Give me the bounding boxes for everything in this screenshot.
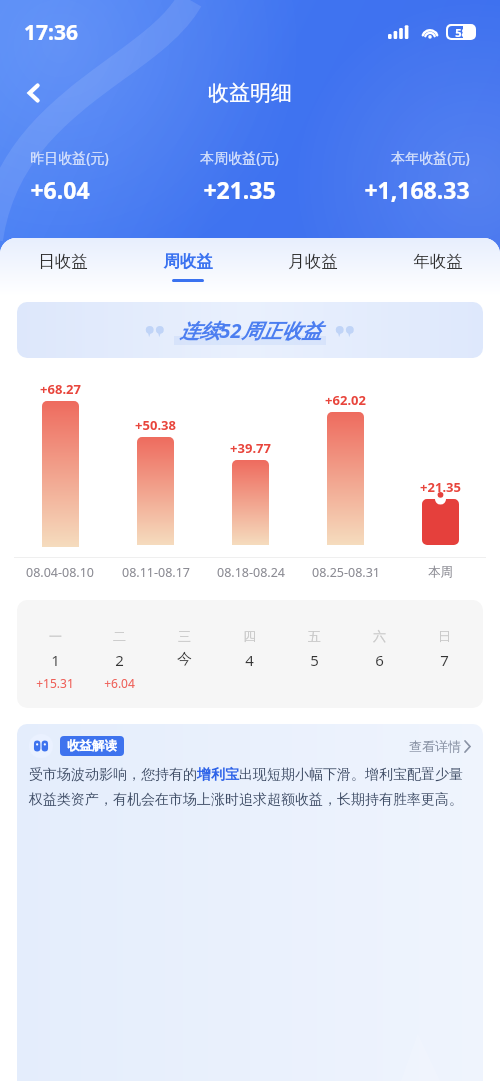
staticText: 08.11-08.17 — [122, 564, 190, 581]
staticText: 7 — [440, 650, 449, 670]
staticText: +6.04 — [104, 675, 135, 691]
staticText: +50.38 — [135, 416, 176, 434]
button[interactable]: Back — [10, 69, 58, 117]
staticText: 今 — [177, 650, 192, 669]
staticText: 本年收益(元) — [391, 148, 470, 167]
button[interactable]: +50.38 — [108, 380, 203, 545]
staticText: 收益解读 — [67, 738, 117, 754]
button[interactable]: 六 — [347, 628, 412, 675]
button[interactable]: 年收益 — [375, 238, 500, 296]
staticText: 58 — [455, 25, 468, 40]
button[interactable]: 五 — [282, 628, 347, 675]
button[interactable]: 四 — [217, 628, 282, 675]
staticText: +1,168.33 — [364, 174, 470, 205]
button[interactable]: +21.35 — [393, 380, 488, 545]
staticText: 连续52周正收益 — [179, 317, 322, 344]
button[interactable]: 三 — [152, 628, 217, 674]
staticText: +21.35 — [203, 174, 276, 205]
staticText: 四 — [243, 628, 256, 644]
staticText: 年收益 — [413, 251, 463, 272]
staticText: 周收益 — [163, 251, 213, 272]
button[interactable]: 二 — [87, 628, 152, 691]
staticText: +6.04 — [30, 174, 90, 205]
staticText: +39.77 — [230, 439, 271, 457]
staticText: 1 — [51, 650, 60, 670]
button[interactable]: 月收益 — [250, 238, 375, 296]
staticText: 4 — [245, 650, 254, 670]
staticText: 日收益 — [38, 251, 88, 272]
staticText: 2 — [115, 650, 124, 670]
staticText: 三 — [178, 628, 191, 644]
staticText: 日 — [438, 628, 451, 644]
staticText: +21.35 — [420, 478, 461, 496]
staticText: 本周 — [428, 564, 453, 580]
staticText: 受市场波动影响，您持有的增利宝出现短期小幅下滑。增利宝配置少量权益类资产，有机会… — [29, 766, 471, 808]
button[interactable]: +62.02 — [298, 380, 393, 545]
button[interactable]: 收益解读 — [17, 724, 483, 1081]
staticText: 08.18-08.24 — [217, 564, 285, 581]
staticText: 6 — [375, 650, 384, 670]
button[interactable]: 一 — [23, 628, 87, 691]
staticText: 一 — [49, 628, 62, 644]
staticText: 收益明细 — [208, 80, 292, 106]
button[interactable]: 日 — [412, 628, 477, 675]
button[interactable]: +39.77 — [203, 380, 298, 545]
button[interactable]: 查看详情 — [409, 738, 471, 754]
staticText: 昨日收益(元) — [30, 148, 109, 167]
button[interactable]: 周收益 — [125, 238, 250, 296]
staticText: 5 — [310, 650, 319, 670]
staticText: 月收益 — [288, 251, 338, 272]
staticText: 五 — [308, 628, 321, 644]
staticText: +15.31 — [36, 675, 74, 691]
staticText: 六 — [373, 628, 386, 644]
button[interactable]: +68.27 — [12, 380, 108, 547]
staticText: 本周收益(元) — [200, 148, 279, 167]
staticText: 二 — [113, 628, 126, 644]
staticText: 17:36 — [24, 18, 78, 47]
staticText: 08.25-08.31 — [312, 564, 380, 581]
staticText: 查看详情 — [409, 738, 461, 754]
button[interactable]: 日收益 — [0, 238, 125, 296]
staticText: +62.02 — [325, 391, 366, 409]
staticText: +68.27 — [40, 380, 81, 398]
staticText: 08.04-08.10 — [26, 564, 94, 581]
